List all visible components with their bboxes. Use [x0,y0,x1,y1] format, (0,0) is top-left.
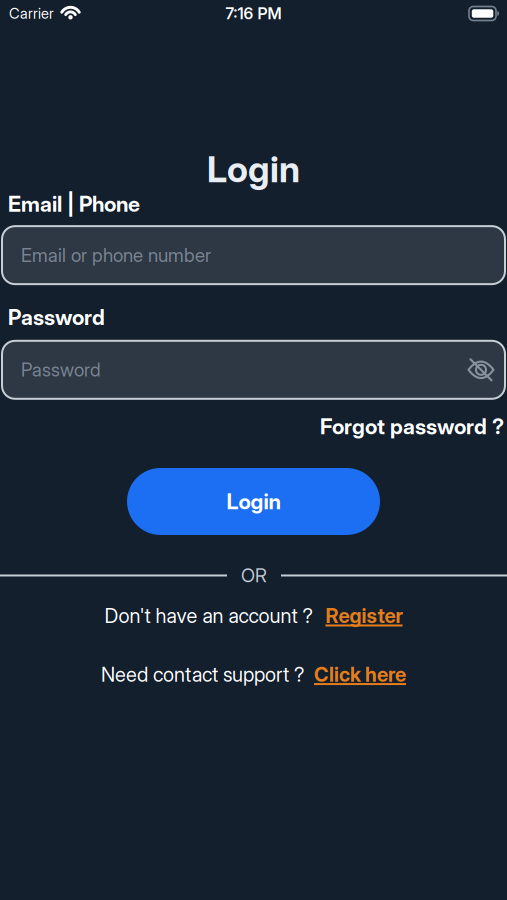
button[interactable]: Forgot password ? [320,414,504,439]
staticText: Register [325,604,402,628]
staticText: Forgot password ? [320,414,504,439]
button[interactable]: Click here [314,663,406,686]
staticText: Need contact support ? [101,663,304,686]
button[interactable]: Login [127,468,380,535]
staticText: Email or phone number [21,244,211,266]
staticText: Don't have an account ? [104,604,312,628]
staticText: 7:16 PM [225,4,281,23]
button[interactable]: Register [325,604,402,628]
staticText: Carrier [9,5,54,22]
staticText: Click here [314,663,406,686]
staticText: Password [8,305,105,330]
staticText: Email | Phone [8,191,140,217]
button[interactable]: Show password [467,359,495,381]
staticText: Login [207,148,300,190]
staticText: Password [21,359,101,381]
staticText: OR [241,564,267,586]
staticText: Login [226,489,280,514]
